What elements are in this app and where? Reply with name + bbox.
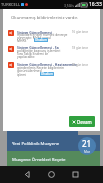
button[interactable] <box>3 30 100 44</box>
staticText: alınmıştır. Mobil uygul <box>17 35 51 39</box>
staticText: işlemi <box>17 72 27 76</box>
button[interactable]: Home <box>46 169 57 180</box>
button[interactable]: Yeni Poliklinik Muayene <box>7 135 100 151</box>
button[interactable]: Muayene Örnekleri Reçete <box>7 151 100 166</box>
staticText: Sistem Güncellemesi - Sa <box>17 45 59 50</box>
staticText: TURKCELL <box>1 2 20 7</box>
button[interactable]: Devam <box>69 116 95 127</box>
button[interactable] <box>3 46 100 60</box>
staticText: görüntülenmesi <box>17 68 42 72</box>
staticText: Devam <box>77 119 92 125</box>
button[interactable]: 21 <box>78 137 96 155</box>
staticText: 16:33 <box>89 1 102 8</box>
button[interactable]: Recent apps <box>70 169 81 180</box>
staticText: 16 gün önce <box>72 30 89 34</box>
staticText: Sıra Takip Sistemi ile <box>17 51 49 55</box>
staticText: 18 gün önce <box>72 46 89 50</box>
button[interactable]: Okudum <box>40 72 54 76</box>
staticText: polikliniğe başvuru işlemleri <box>17 48 61 52</box>
staticText: Muayene Örnekleri Reçete <box>12 156 66 162</box>
staticText: 21 <box>82 138 92 149</box>
staticText: Sistem Güncellemesi - Hastanemize <box>17 62 77 67</box>
staticText: 3,5G/s <box>64 3 74 7</box>
staticText: Okudum <box>35 38 47 42</box>
staticText: Okudum <box>41 72 53 76</box>
staticText: Yeni Poliklinik Muayene <box>12 140 60 146</box>
button[interactable]: Back <box>22 169 33 180</box>
staticText: yapılacaktır. <box>17 54 36 58</box>
button[interactable] <box>3 62 100 76</box>
staticText: Sistem Güncellemesi <box>17 30 52 35</box>
staticText: mobilden erişim hizmeti devreye <box>17 32 68 36</box>
staticText: gönderilmiş Reçete bilgilerinin <box>17 65 65 69</box>
staticText: Okunmamış bildirimleriniz vardır. <box>11 14 78 20</box>
button[interactable]: Okudum <box>34 38 48 42</box>
staticText: 20 gün önce <box>72 63 89 67</box>
staticText: MHRS <box>17 38 27 42</box>
staticText: Mar <box>84 150 90 154</box>
